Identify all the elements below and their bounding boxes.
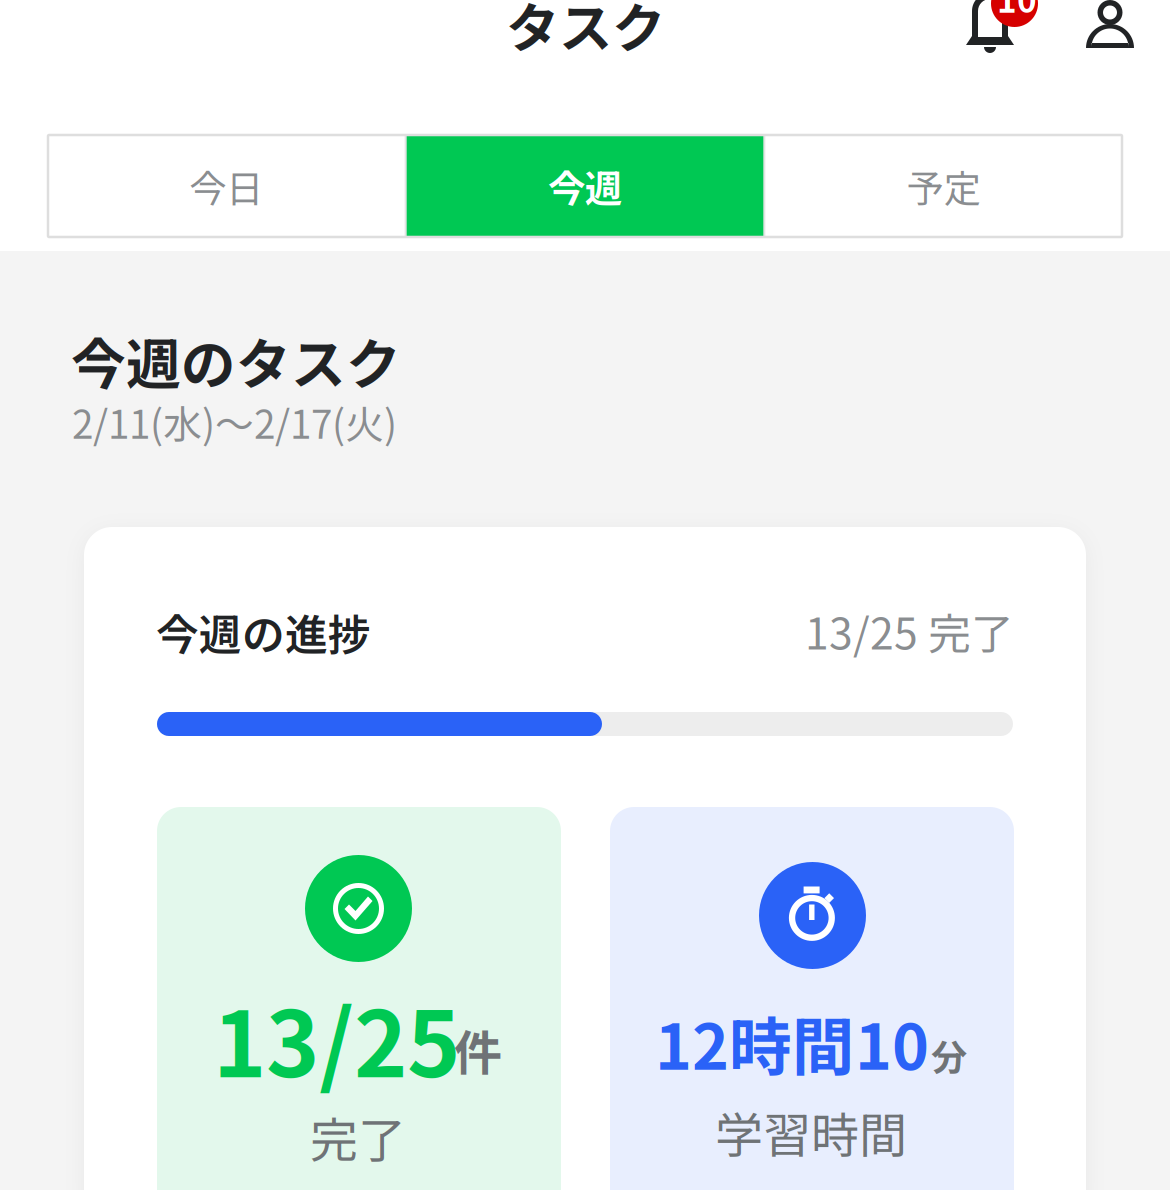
button[interactable]: 通知: [936, 0, 1048, 86]
staticText: 10: [997, 0, 1037, 22]
staticText: 12時間10: [655, 997, 929, 1088]
button[interactable]: 予定: [765, 135, 1122, 237]
staticText: 完了: [310, 1102, 406, 1171]
staticText: 学習時間: [715, 1097, 907, 1166]
button[interactable]: 今週: [407, 135, 763, 237]
staticText: 今週のタスク: [71, 321, 401, 400]
button[interactable]: 今日: [48, 135, 405, 237]
staticText: 今日: [189, 159, 263, 213]
staticText: 今週の進捗: [156, 601, 371, 663]
staticText: 予定: [907, 159, 981, 213]
staticText: 2/11(水)〜2/17(火): [72, 394, 397, 450]
staticText: タスク: [506, 0, 665, 63]
staticText: 分: [931, 1029, 967, 1081]
button[interactable]: プロフィール: [1068, 0, 1152, 86]
staticText: 今週: [548, 159, 622, 213]
staticText: 件: [454, 1015, 502, 1084]
staticText: 13/25: [213, 972, 460, 1103]
staticText: 13/25 完了: [805, 600, 1014, 662]
